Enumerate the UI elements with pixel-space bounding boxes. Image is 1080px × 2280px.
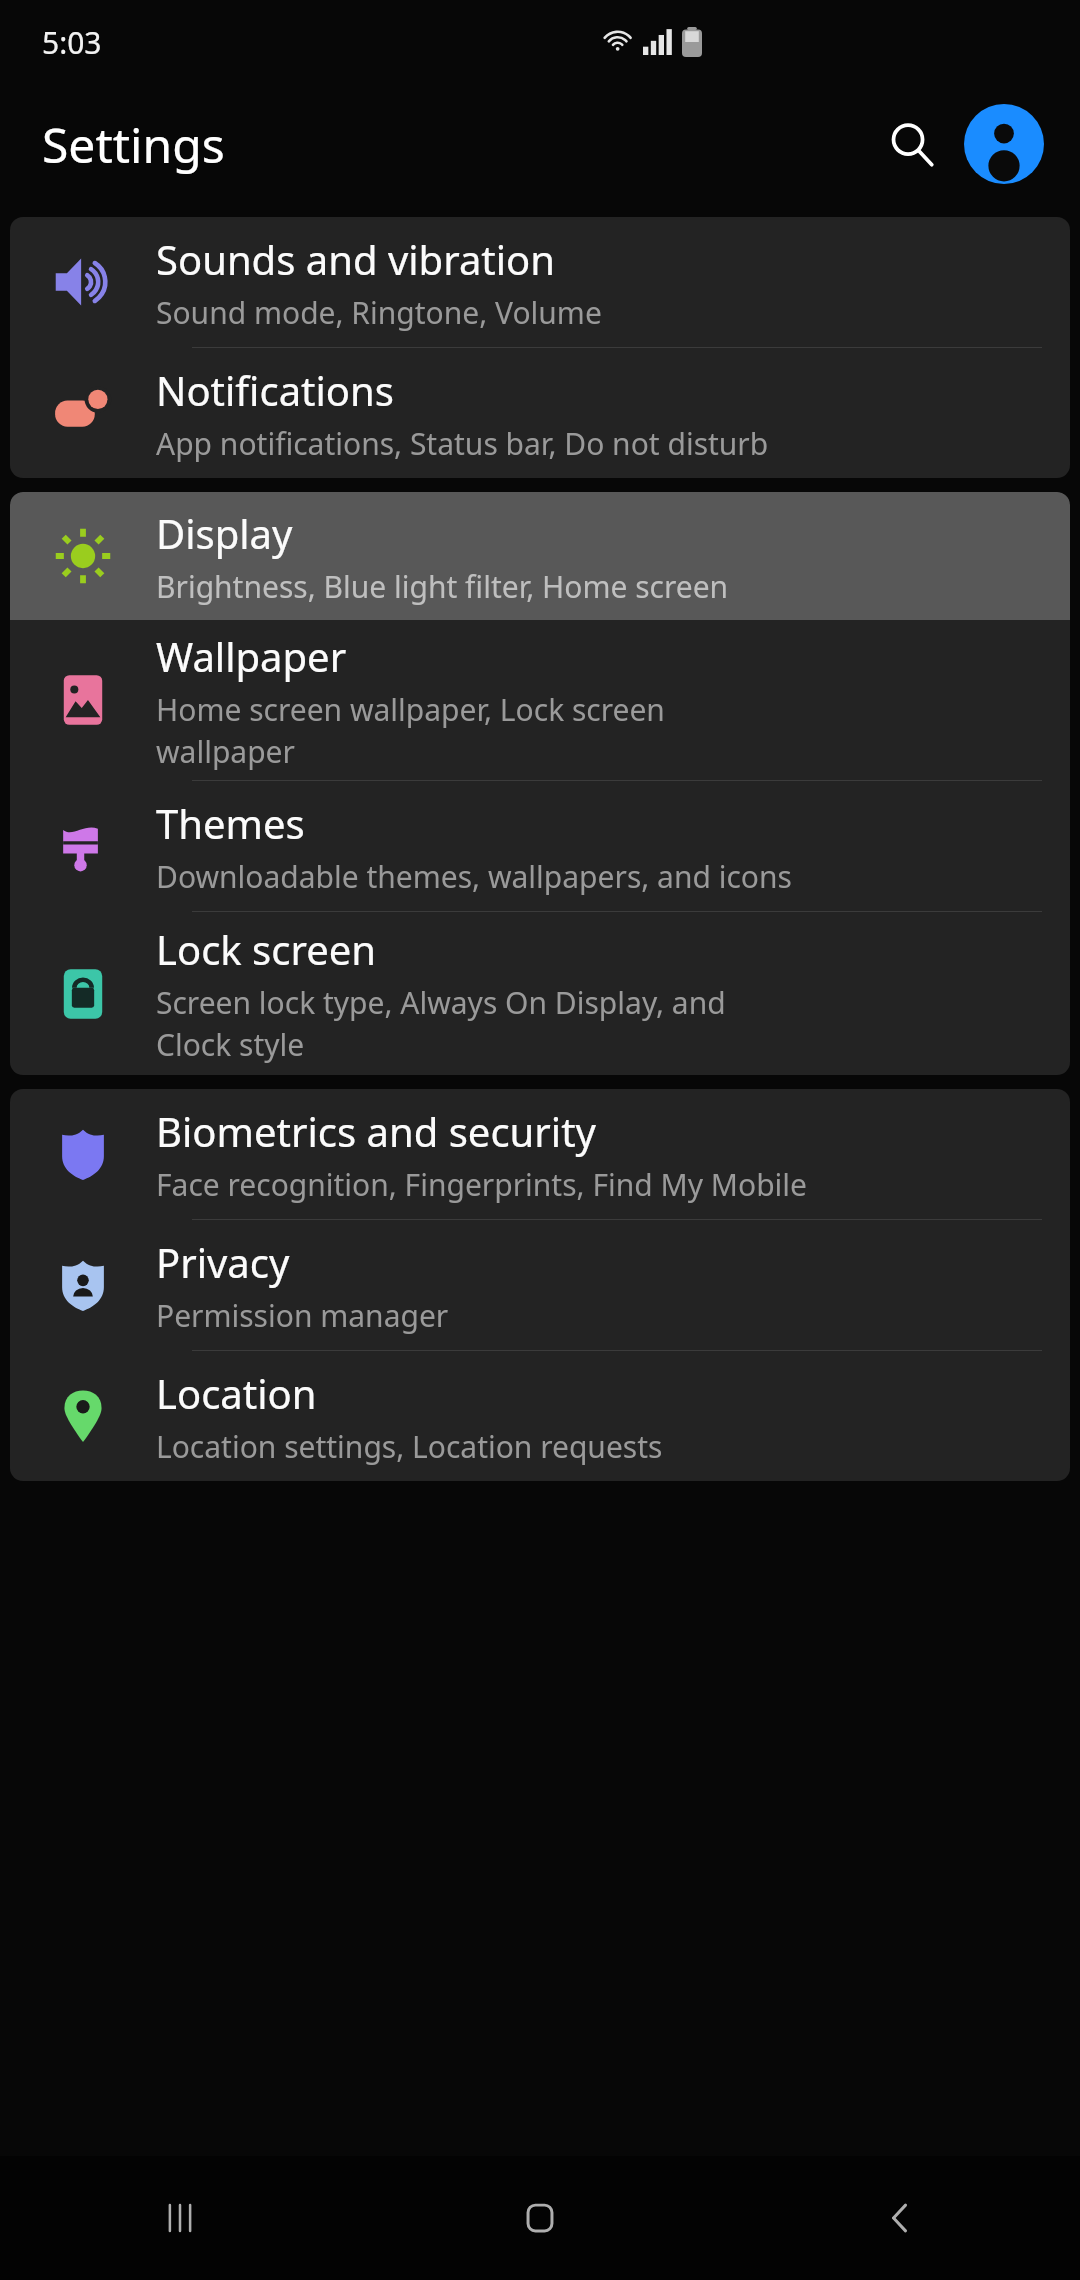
- staticText: Notifications: [156, 363, 394, 417]
- button[interactable]: Themes: [10, 781, 1070, 911]
- staticText: Themes: [156, 796, 305, 850]
- button[interactable]: Display: [10, 492, 1070, 620]
- button[interactable]: Back: [720, 2156, 1080, 2280]
- button[interactable]: Account: [964, 104, 1044, 184]
- button[interactable]: Home: [360, 2156, 720, 2280]
- button[interactable]: Biometrics and security: [10, 1089, 1070, 1219]
- staticText: Brightness, Blue light filter, Home scre…: [156, 566, 729, 607]
- staticText: Sound mode, Ringtone, Volume: [156, 292, 602, 333]
- staticText: Settings: [42, 112, 225, 177]
- staticText: Location: [156, 1366, 317, 1420]
- button[interactable]: Notifications: [10, 348, 1070, 478]
- button[interactable]: Location: [10, 1351, 1070, 1481]
- staticText: Downloadable themes, wallpapers, and ico…: [156, 856, 792, 897]
- staticText: Biometrics and security: [156, 1104, 596, 1158]
- staticText: Lock screen: [156, 922, 377, 976]
- button[interactable]: Recents: [0, 2156, 360, 2280]
- staticText: Home screen wallpaper, Lock screen wallp…: [156, 689, 665, 772]
- staticText: Location settings, Location requests: [156, 1426, 663, 1467]
- staticText: 5:03: [42, 22, 102, 63]
- button[interactable]: Search: [870, 102, 954, 186]
- staticText: Display: [156, 506, 293, 560]
- staticText: Face recognition, Fingerprints, Find My …: [156, 1164, 807, 1205]
- staticText: App notifications, Status bar, Do not di…: [156, 423, 769, 464]
- staticText: Screen lock type, Always On Display, and…: [156, 982, 726, 1065]
- button[interactable]: Sounds and vibration: [10, 217, 1070, 347]
- staticText: Sounds and vibration: [156, 232, 555, 286]
- staticText: Permission manager: [156, 1295, 449, 1336]
- staticText: Wallpaper: [156, 629, 347, 683]
- staticText: Privacy: [156, 1235, 290, 1289]
- button[interactable]: Privacy: [10, 1220, 1070, 1350]
- button[interactable]: Wallpaper: [10, 620, 1070, 780]
- button[interactable]: Lock screen: [10, 912, 1070, 1075]
